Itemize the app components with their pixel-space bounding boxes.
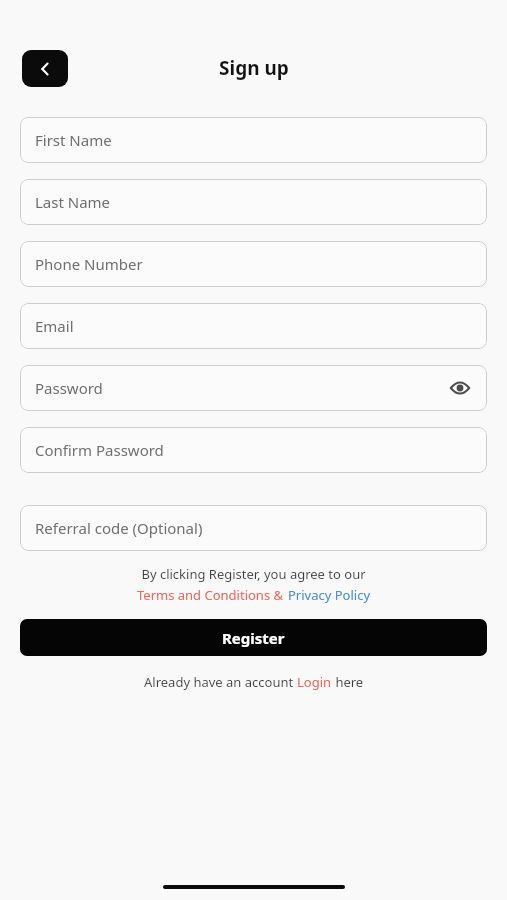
button[interactable]: Privacy Policy	[288, 586, 371, 604]
button[interactable]: Referral code (Optional)	[20, 505, 487, 551]
button[interactable]: Confirm Password	[20, 427, 487, 473]
staticText: By clicking Register, you agree to our	[20, 565, 487, 583]
button[interactable]: Phone Number	[20, 241, 487, 287]
staticText: here	[332, 673, 364, 691]
button[interactable]: Terms and Conditions &	[137, 586, 284, 604]
button[interactable]: Back	[22, 50, 68, 87]
button[interactable]: First Name	[20, 117, 487, 163]
staticText: Referral code (Optional)	[35, 518, 203, 538]
staticText: Confirm Password	[35, 440, 164, 460]
staticText: First Name	[35, 130, 112, 150]
button[interactable]: Login	[297, 673, 332, 691]
staticText: Register	[222, 628, 285, 648]
staticText: Last Name	[35, 192, 111, 212]
staticText: Already have an account	[144, 673, 297, 691]
button[interactable]: Last Name	[20, 179, 487, 225]
staticText: Sign up	[219, 55, 289, 81]
button[interactable]: Register	[20, 619, 487, 656]
staticText: Phone Number	[35, 254, 143, 274]
button[interactable]: Password	[20, 365, 487, 411]
staticText: Password	[35, 378, 103, 398]
button[interactable]: Show password	[447, 375, 473, 401]
button[interactable]: Email	[20, 303, 487, 349]
staticText: Email	[35, 316, 74, 336]
